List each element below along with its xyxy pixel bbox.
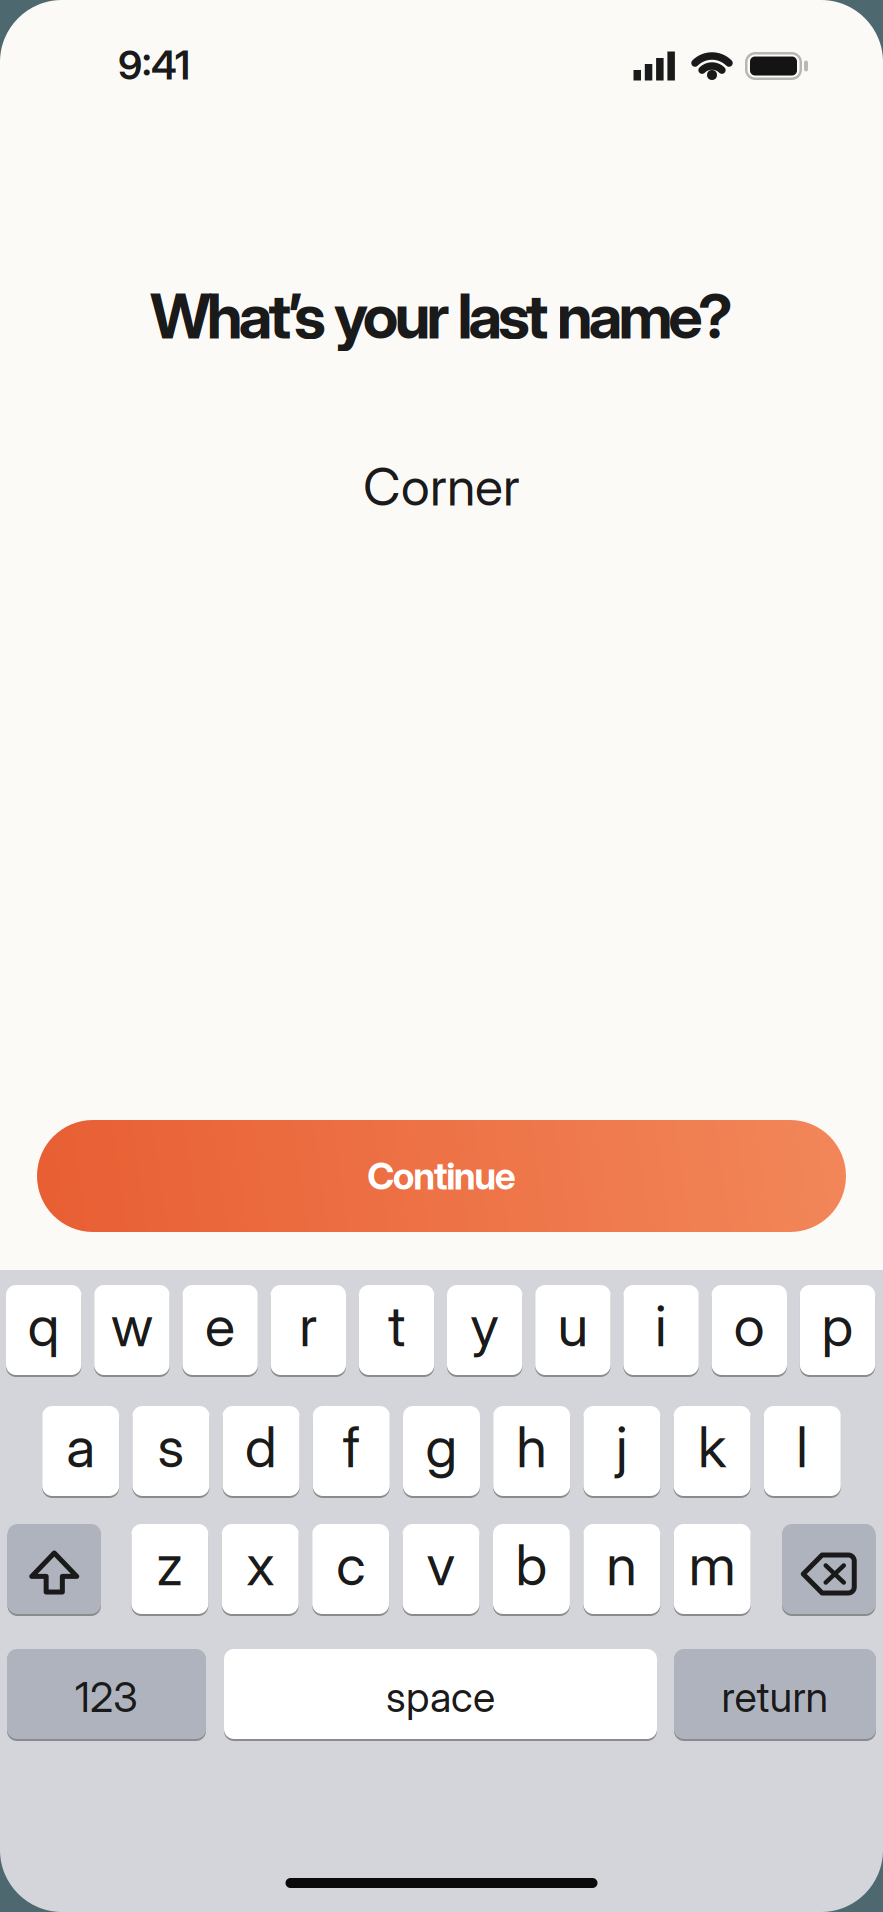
staticText: x bbox=[246, 1531, 274, 1599]
staticText: j bbox=[616, 1413, 628, 1481]
staticText: t bbox=[388, 1292, 405, 1360]
button[interactable]: j bbox=[583, 1405, 660, 1497]
button[interactable]: i bbox=[623, 1284, 699, 1376]
button[interactable]: Shift bbox=[7, 1523, 101, 1615]
staticText: y bbox=[470, 1292, 499, 1360]
staticText: a bbox=[66, 1413, 95, 1481]
button[interactable]: q bbox=[6, 1284, 81, 1376]
button[interactable]: c bbox=[312, 1523, 389, 1615]
staticText: name? bbox=[557, 279, 733, 353]
button[interactable]: w bbox=[94, 1284, 170, 1376]
button[interactable]: o bbox=[712, 1284, 787, 1376]
staticText: space bbox=[386, 1672, 495, 1722]
button[interactable]: 123 bbox=[7, 1648, 206, 1740]
staticText: z bbox=[156, 1531, 183, 1599]
button[interactable]: m bbox=[674, 1523, 751, 1615]
staticText: u bbox=[557, 1292, 588, 1360]
button[interactable]: r bbox=[271, 1284, 346, 1376]
staticText: p bbox=[821, 1292, 853, 1360]
button[interactable]: a bbox=[42, 1405, 119, 1497]
staticText: i bbox=[655, 1292, 667, 1360]
staticText: 123 bbox=[75, 1672, 138, 1722]
staticText: f bbox=[343, 1413, 360, 1481]
staticText: k bbox=[698, 1413, 726, 1481]
button[interactable]: x bbox=[222, 1523, 299, 1615]
staticText: o bbox=[734, 1292, 765, 1360]
staticText: v bbox=[427, 1531, 456, 1599]
button[interactable]: e bbox=[182, 1284, 258, 1376]
button[interactable]: l bbox=[764, 1405, 841, 1497]
button[interactable]: return bbox=[674, 1648, 876, 1740]
button[interactable]: t bbox=[359, 1284, 434, 1376]
button[interactable]: Continue bbox=[37, 1120, 846, 1232]
button[interactable]: space bbox=[224, 1648, 657, 1740]
button[interactable]: y bbox=[447, 1284, 522, 1376]
button[interactable]: u bbox=[535, 1284, 611, 1376]
button[interactable]: p bbox=[800, 1284, 875, 1376]
staticText: w bbox=[111, 1292, 153, 1360]
button[interactable]: d bbox=[223, 1405, 300, 1497]
staticText: return bbox=[721, 1672, 828, 1722]
staticText: b bbox=[515, 1531, 547, 1599]
staticText: 9:41 bbox=[118, 41, 190, 89]
staticText: n bbox=[606, 1531, 637, 1599]
button[interactable]: k bbox=[674, 1405, 751, 1497]
staticText: g bbox=[425, 1413, 457, 1481]
button[interactable]: f bbox=[313, 1405, 390, 1497]
button[interactable]: z bbox=[131, 1523, 208, 1615]
staticText: r bbox=[299, 1292, 317, 1360]
staticText: d bbox=[245, 1413, 277, 1481]
button[interactable]: v bbox=[403, 1523, 479, 1615]
staticText: Continue bbox=[367, 1153, 516, 1199]
staticText: your bbox=[334, 279, 449, 353]
staticText: c bbox=[336, 1531, 365, 1599]
staticText: Corner bbox=[363, 455, 520, 518]
staticText: q bbox=[28, 1292, 60, 1360]
button[interactable]: Delete bbox=[782, 1523, 875, 1615]
staticText: last bbox=[457, 279, 549, 353]
staticText: h bbox=[516, 1413, 547, 1481]
button[interactable]: h bbox=[493, 1405, 570, 1497]
button[interactable]: g bbox=[403, 1405, 480, 1497]
staticText: s bbox=[157, 1413, 184, 1481]
button[interactable]: n bbox=[583, 1523, 660, 1615]
staticText: What’s bbox=[150, 279, 326, 353]
staticText: m bbox=[689, 1531, 736, 1599]
button[interactable]: b bbox=[493, 1523, 570, 1615]
staticText: e bbox=[205, 1292, 235, 1360]
button[interactable]: s bbox=[132, 1405, 209, 1497]
staticText: l bbox=[796, 1413, 808, 1481]
